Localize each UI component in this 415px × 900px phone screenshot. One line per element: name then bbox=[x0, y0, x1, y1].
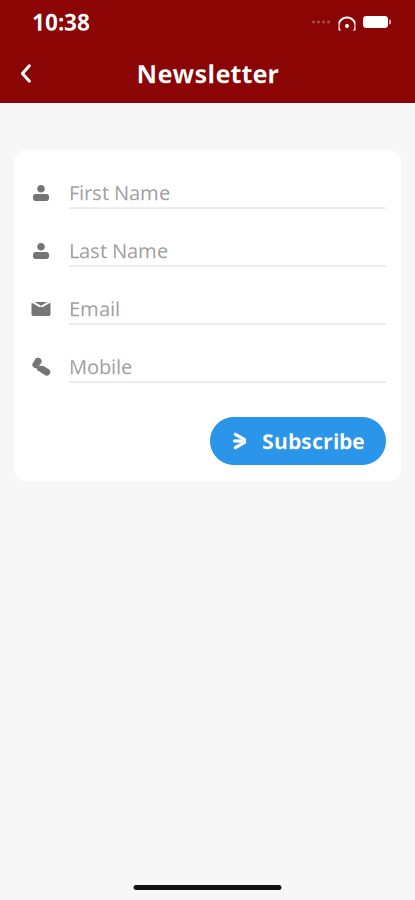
staticText: Mobile bbox=[69, 353, 132, 380]
button[interactable]: Back bbox=[4, 51, 48, 95]
staticText: Subscribe bbox=[262, 427, 365, 455]
button[interactable]: Subscribe bbox=[210, 417, 386, 465]
staticText: Email bbox=[69, 295, 120, 322]
staticText: Newsletter bbox=[136, 57, 278, 90]
staticText: Last Name bbox=[69, 237, 168, 264]
staticText: 10:38 bbox=[32, 7, 90, 37]
staticText: First Name bbox=[69, 179, 170, 206]
